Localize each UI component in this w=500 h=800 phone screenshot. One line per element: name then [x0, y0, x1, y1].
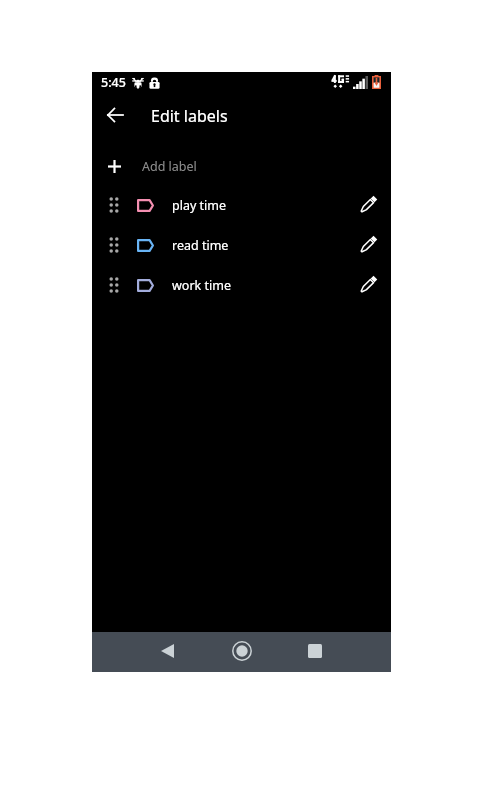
staticText: Add label — [142, 158, 197, 175]
button[interactable]: read time — [92, 225, 391, 265]
staticText: read time — [172, 237, 229, 254]
button[interactable]: Edit read time — [349, 227, 385, 263]
button[interactable]: Edit play time — [349, 187, 385, 223]
button[interactable]: Add label — [92, 145, 391, 187]
staticText: 5:45 — [101, 74, 126, 91]
button[interactable]: Back — [93, 93, 137, 137]
button[interactable]: Edit work time — [349, 267, 385, 303]
staticText: work time — [172, 277, 231, 294]
button[interactable]: work time — [92, 265, 391, 305]
button[interactable]: Recents — [295, 631, 335, 671]
staticText: Edit labels — [151, 105, 228, 127]
button[interactable]: play time — [92, 185, 391, 225]
button[interactable]: Home — [222, 631, 262, 671]
button[interactable]: Back — [147, 631, 187, 671]
staticText: play time — [172, 197, 227, 214]
